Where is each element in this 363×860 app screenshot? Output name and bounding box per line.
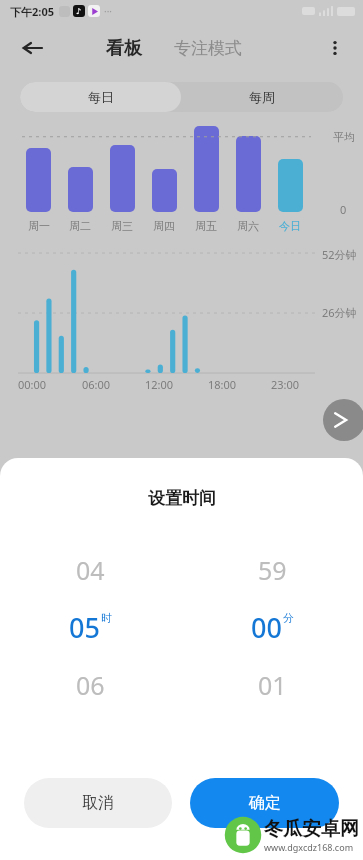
staticText: 今日 bbox=[279, 219, 301, 233]
staticText: 周二 bbox=[69, 219, 91, 233]
staticText: 26分钟 bbox=[322, 305, 357, 320]
staticText: 周三 bbox=[111, 219, 133, 233]
staticText: 时 bbox=[101, 611, 112, 625]
staticText: 周一 bbox=[28, 219, 50, 233]
staticText: 确定 bbox=[249, 793, 281, 813]
staticText: 设置时间 bbox=[148, 488, 216, 509]
staticText: 专注模式 bbox=[174, 38, 242, 59]
button[interactable]: 专注模式 bbox=[168, 32, 248, 65]
staticText: 06 bbox=[76, 668, 105, 702]
staticText: 52分钟 bbox=[322, 247, 357, 262]
button[interactable]: 01 bbox=[181, 668, 363, 702]
button[interactable]: More options bbox=[315, 28, 355, 68]
staticText: 看板 bbox=[106, 37, 142, 60]
staticText: 18:00 bbox=[208, 377, 271, 392]
button[interactable]: 59 bbox=[181, 553, 363, 587]
staticText: 每日 bbox=[88, 89, 114, 105]
staticText: ··· bbox=[104, 4, 113, 18]
staticText: 00:00 bbox=[18, 377, 82, 392]
staticText: 05 bbox=[69, 609, 100, 646]
button[interactable]: 看板 bbox=[100, 31, 148, 66]
staticText: 59 bbox=[258, 553, 287, 587]
button[interactable]: 取消 bbox=[24, 778, 172, 828]
staticText: www.dgxcdz168.com bbox=[264, 841, 354, 853]
staticText: 取消 bbox=[82, 793, 114, 813]
staticText: 06:00 bbox=[82, 377, 145, 392]
staticText: ♪ bbox=[76, 7, 82, 16]
staticText: 23:00 bbox=[271, 377, 315, 392]
button[interactable]: 确定 bbox=[190, 778, 339, 828]
staticText: 周六 bbox=[237, 219, 259, 233]
staticText: 冬瓜安卓网 bbox=[264, 817, 359, 841]
button[interactable]: Next bbox=[323, 399, 363, 441]
staticText: 分 bbox=[283, 611, 294, 625]
button[interactable]: 05 bbox=[0, 609, 181, 646]
staticText: 平均 bbox=[333, 130, 355, 144]
button[interactable]: 06 bbox=[0, 668, 181, 702]
staticText: 每周 bbox=[249, 89, 275, 105]
button[interactable]: 每周 bbox=[181, 82, 343, 112]
staticText: 01 bbox=[258, 668, 287, 702]
staticText: 下午2:05 bbox=[10, 4, 54, 19]
staticText: 04 bbox=[76, 553, 105, 587]
staticText: 12:00 bbox=[145, 377, 208, 392]
button[interactable]: 04 bbox=[0, 553, 181, 587]
staticText: 0 bbox=[340, 202, 347, 217]
button[interactable]: 每日 bbox=[20, 82, 181, 112]
button[interactable]: Back bbox=[12, 28, 52, 68]
button[interactable]: 00 bbox=[181, 609, 363, 646]
staticText: 周五 bbox=[195, 219, 217, 233]
staticText: 00 bbox=[251, 609, 282, 646]
staticText: 周四 bbox=[153, 219, 175, 233]
